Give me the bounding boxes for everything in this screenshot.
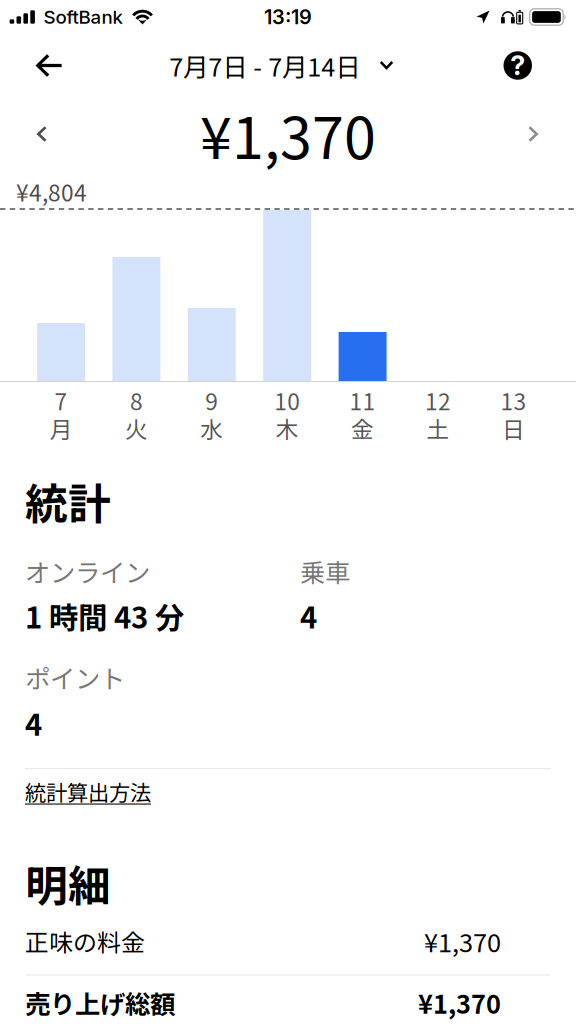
staticText: ¥1,370 xyxy=(418,984,501,1021)
button[interactable]: Previous week xyxy=(0,110,73,158)
staticText: 統計算出方法 xyxy=(25,776,151,807)
button[interactable]: 統計算出方法 xyxy=(25,776,151,807)
button[interactable]: Help xyxy=(487,37,576,94)
staticText: ¥1,370 xyxy=(424,923,501,959)
staticText: 12 xyxy=(425,384,451,417)
staticText: 4 xyxy=(25,702,42,744)
staticText: ¥1,370 xyxy=(200,92,376,175)
staticText: 8 xyxy=(130,384,143,417)
staticText: 土 xyxy=(426,412,449,445)
button[interactable]: 7月7日 - 7月14日 xyxy=(169,37,407,94)
staticText: 4 xyxy=(300,594,317,637)
staticText: 13 xyxy=(500,384,526,417)
staticText: 11 xyxy=(350,384,376,417)
staticText: 13:19 xyxy=(264,5,312,29)
staticText: オンライン xyxy=(25,553,150,589)
staticText: 明細 xyxy=(25,852,111,914)
staticText: ポイント xyxy=(25,659,125,696)
staticText: 月 xyxy=(49,412,72,445)
staticText: 木 xyxy=(276,412,299,445)
button[interactable]: Back xyxy=(0,40,78,91)
staticText: 1 時間 43 分 xyxy=(25,594,184,637)
staticText: 統計 xyxy=(25,470,111,532)
staticText: 10 xyxy=(274,384,300,417)
staticText: 7 xyxy=(54,384,67,417)
staticText: 7月7日 - 7月14日 xyxy=(169,47,360,84)
staticText: ? xyxy=(510,49,525,82)
staticText: 水 xyxy=(200,412,223,445)
staticText: 火 xyxy=(125,412,148,445)
staticText: ¥4,804 xyxy=(16,175,87,208)
staticText: 売り上げ総額 xyxy=(25,984,175,1021)
staticText: 9 xyxy=(205,384,218,417)
staticText: 正味の料金 xyxy=(25,924,145,958)
staticText: 金 xyxy=(351,412,374,445)
staticText: SoftBank xyxy=(43,6,122,28)
staticText: 乗車 xyxy=(300,553,350,589)
staticText: 日 xyxy=(502,412,525,445)
button[interactable]: Next week xyxy=(502,110,576,158)
